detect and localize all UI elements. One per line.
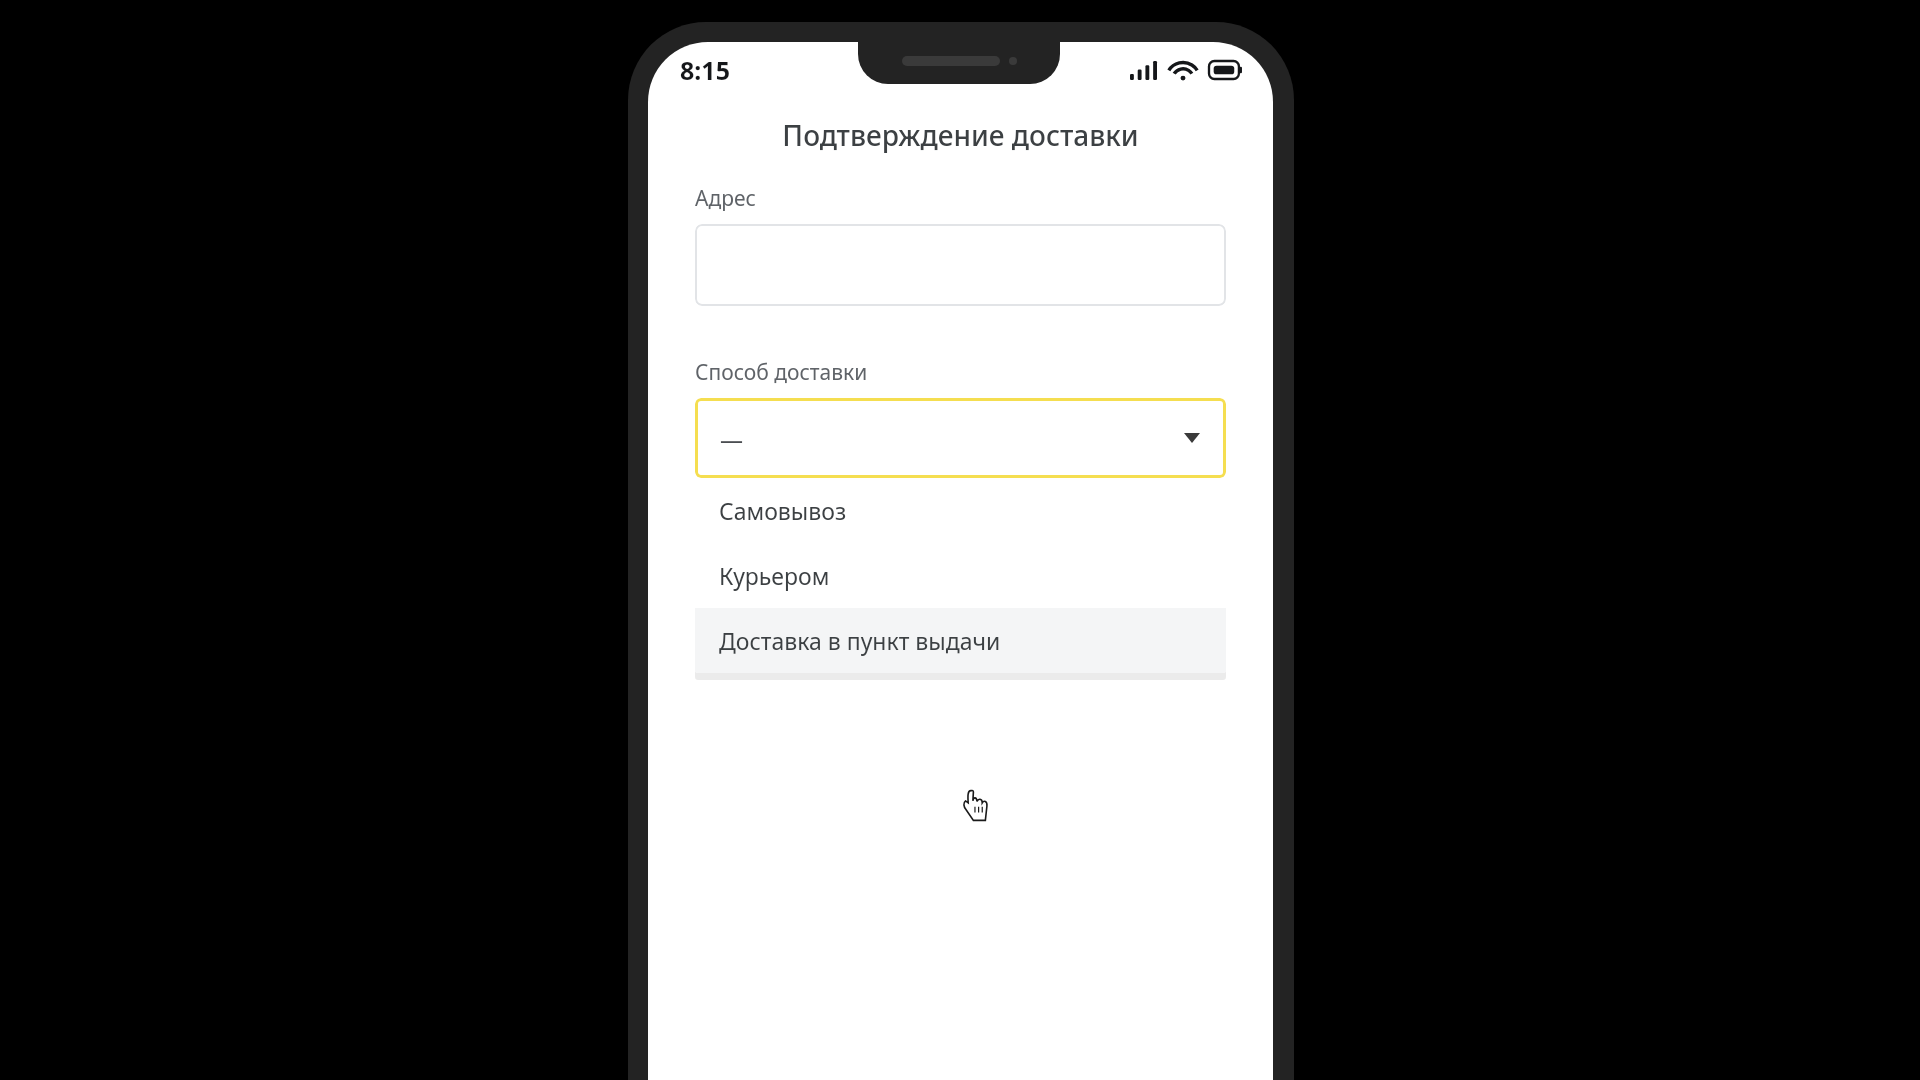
staticText: Подтверждение доставки <box>648 116 1273 154</box>
button[interactable]: Доставка в пункт выдачи <box>695 608 1226 673</box>
staticText: Доставка в пункт выдачи <box>719 625 1001 656</box>
button[interactable]: — <box>695 398 1226 478</box>
button[interactable] <box>695 224 1226 306</box>
button[interactable]: Самовывоз <box>695 478 1226 543</box>
button[interactable]: Курьером <box>695 543 1226 608</box>
staticText: Способ доставки <box>695 358 868 387</box>
staticText: — <box>720 423 743 454</box>
staticText: 8:15 <box>680 53 730 87</box>
staticText: Самовывоз <box>719 495 847 526</box>
staticText: Курьером <box>719 560 830 591</box>
staticText: Адрес <box>695 184 756 213</box>
